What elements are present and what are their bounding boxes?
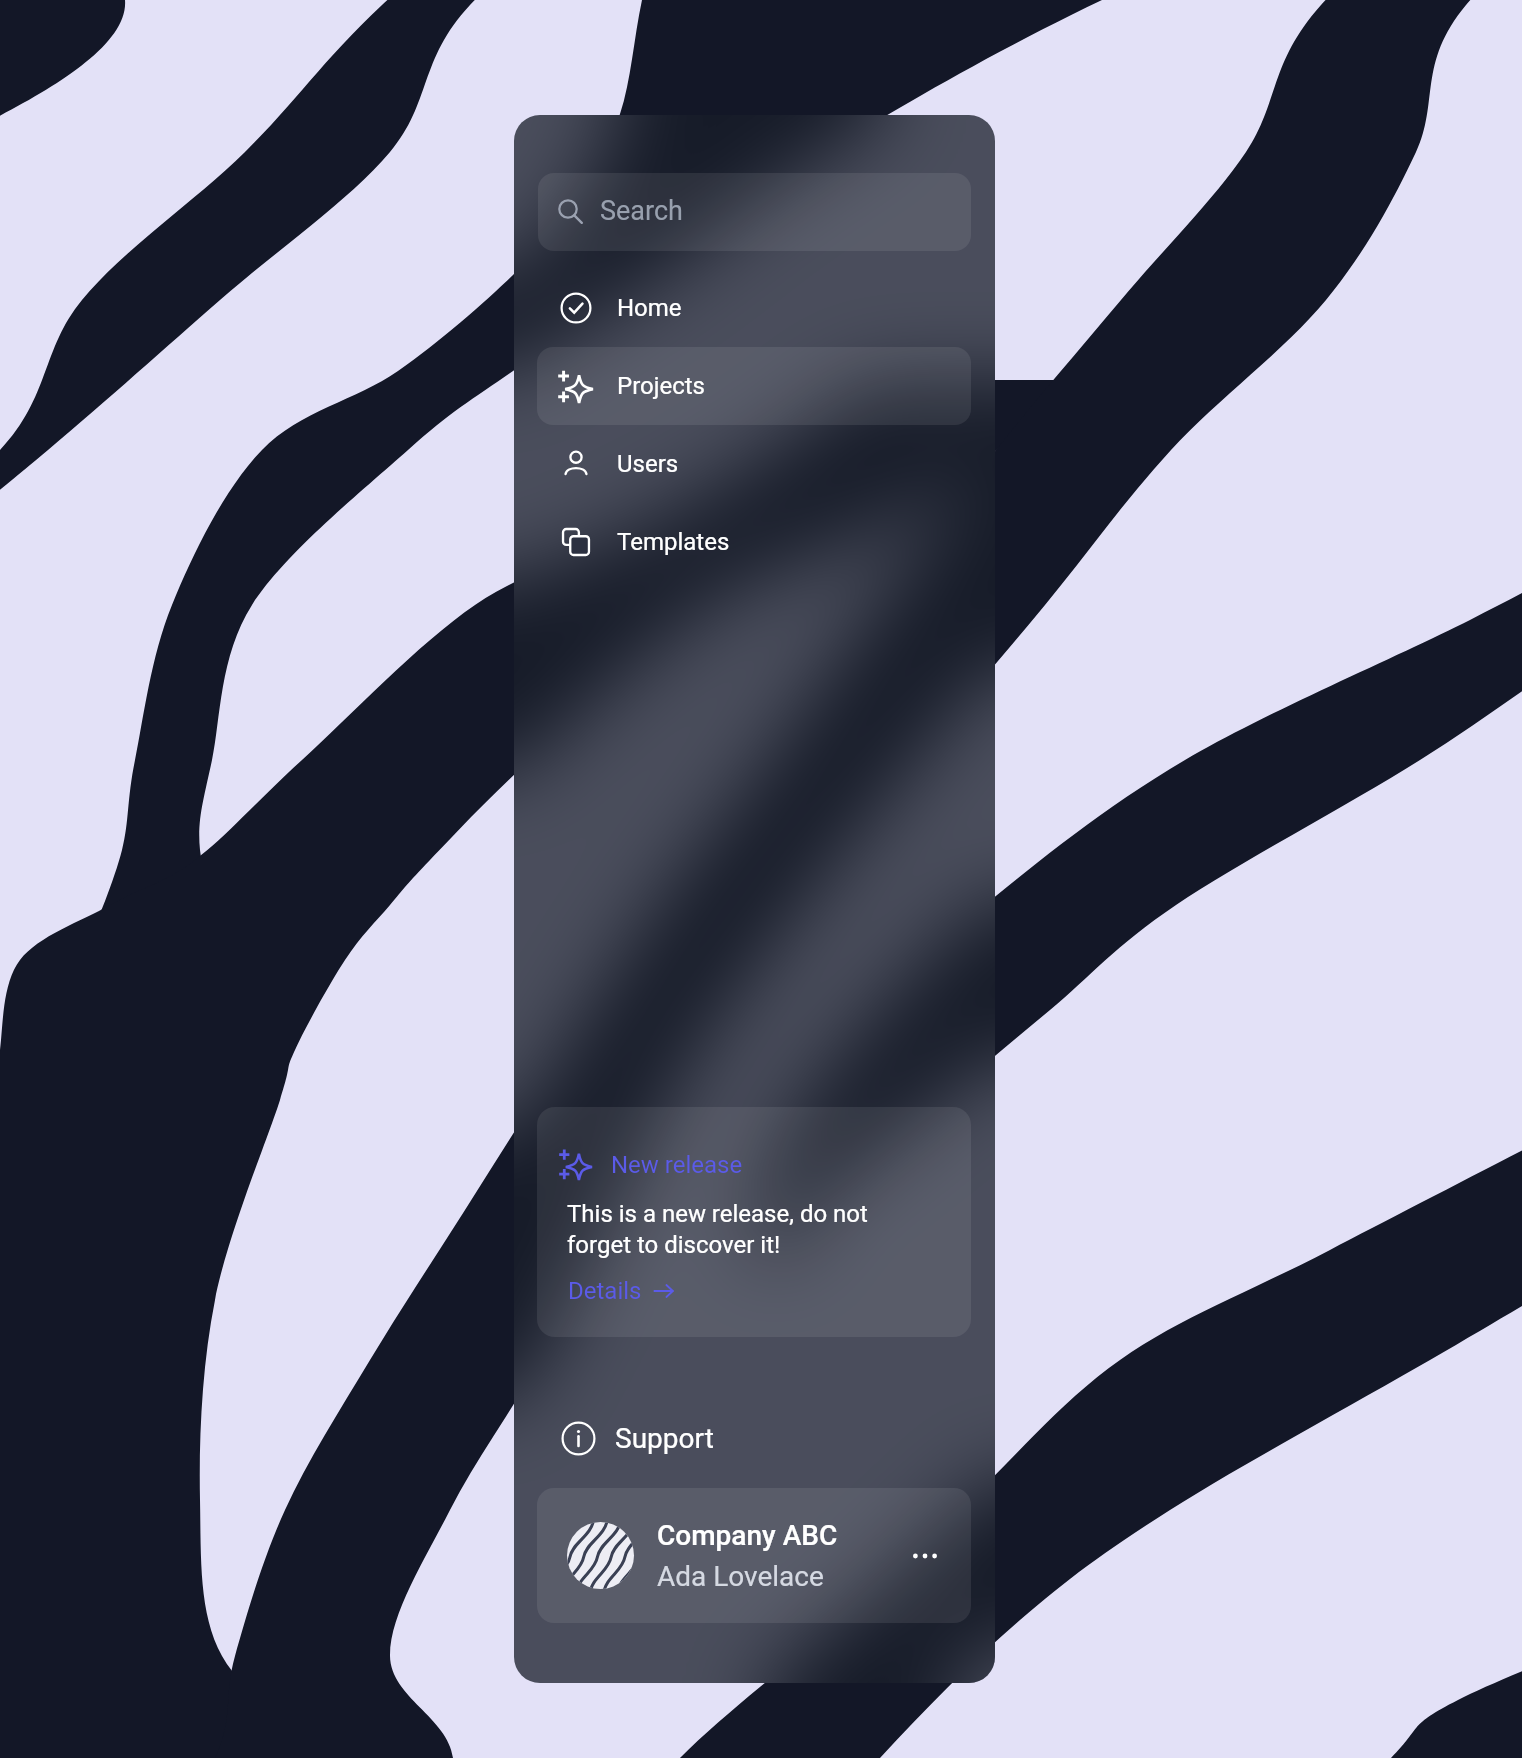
staticText: Projects	[617, 372, 705, 400]
staticText: New release	[611, 1151, 743, 1179]
staticText: This is a new release, do not forget to …	[567, 1200, 868, 1259]
button[interactable]: Company ABC	[537, 1488, 971, 1623]
button[interactable]: Support	[538, 1399, 971, 1477]
button[interactable]: Search	[538, 173, 971, 251]
staticText: Ada Lovelace	[657, 1560, 824, 1593]
button[interactable]: Templates	[537, 503, 971, 581]
staticText: Search	[600, 195, 683, 227]
staticText: Home	[617, 294, 682, 322]
staticText: Users	[617, 450, 679, 478]
button[interactable]: Home	[537, 269, 971, 347]
button[interactable]: Projects	[537, 347, 971, 425]
button[interactable]: New release	[537, 1107, 971, 1337]
button[interactable]: Users	[537, 425, 971, 503]
staticText: Details	[568, 1277, 642, 1305]
button[interactable]: More options	[903, 1534, 947, 1578]
staticText: Support	[615, 1422, 714, 1455]
staticText: Templates	[617, 528, 730, 556]
staticText: Company ABC	[657, 1519, 838, 1552]
